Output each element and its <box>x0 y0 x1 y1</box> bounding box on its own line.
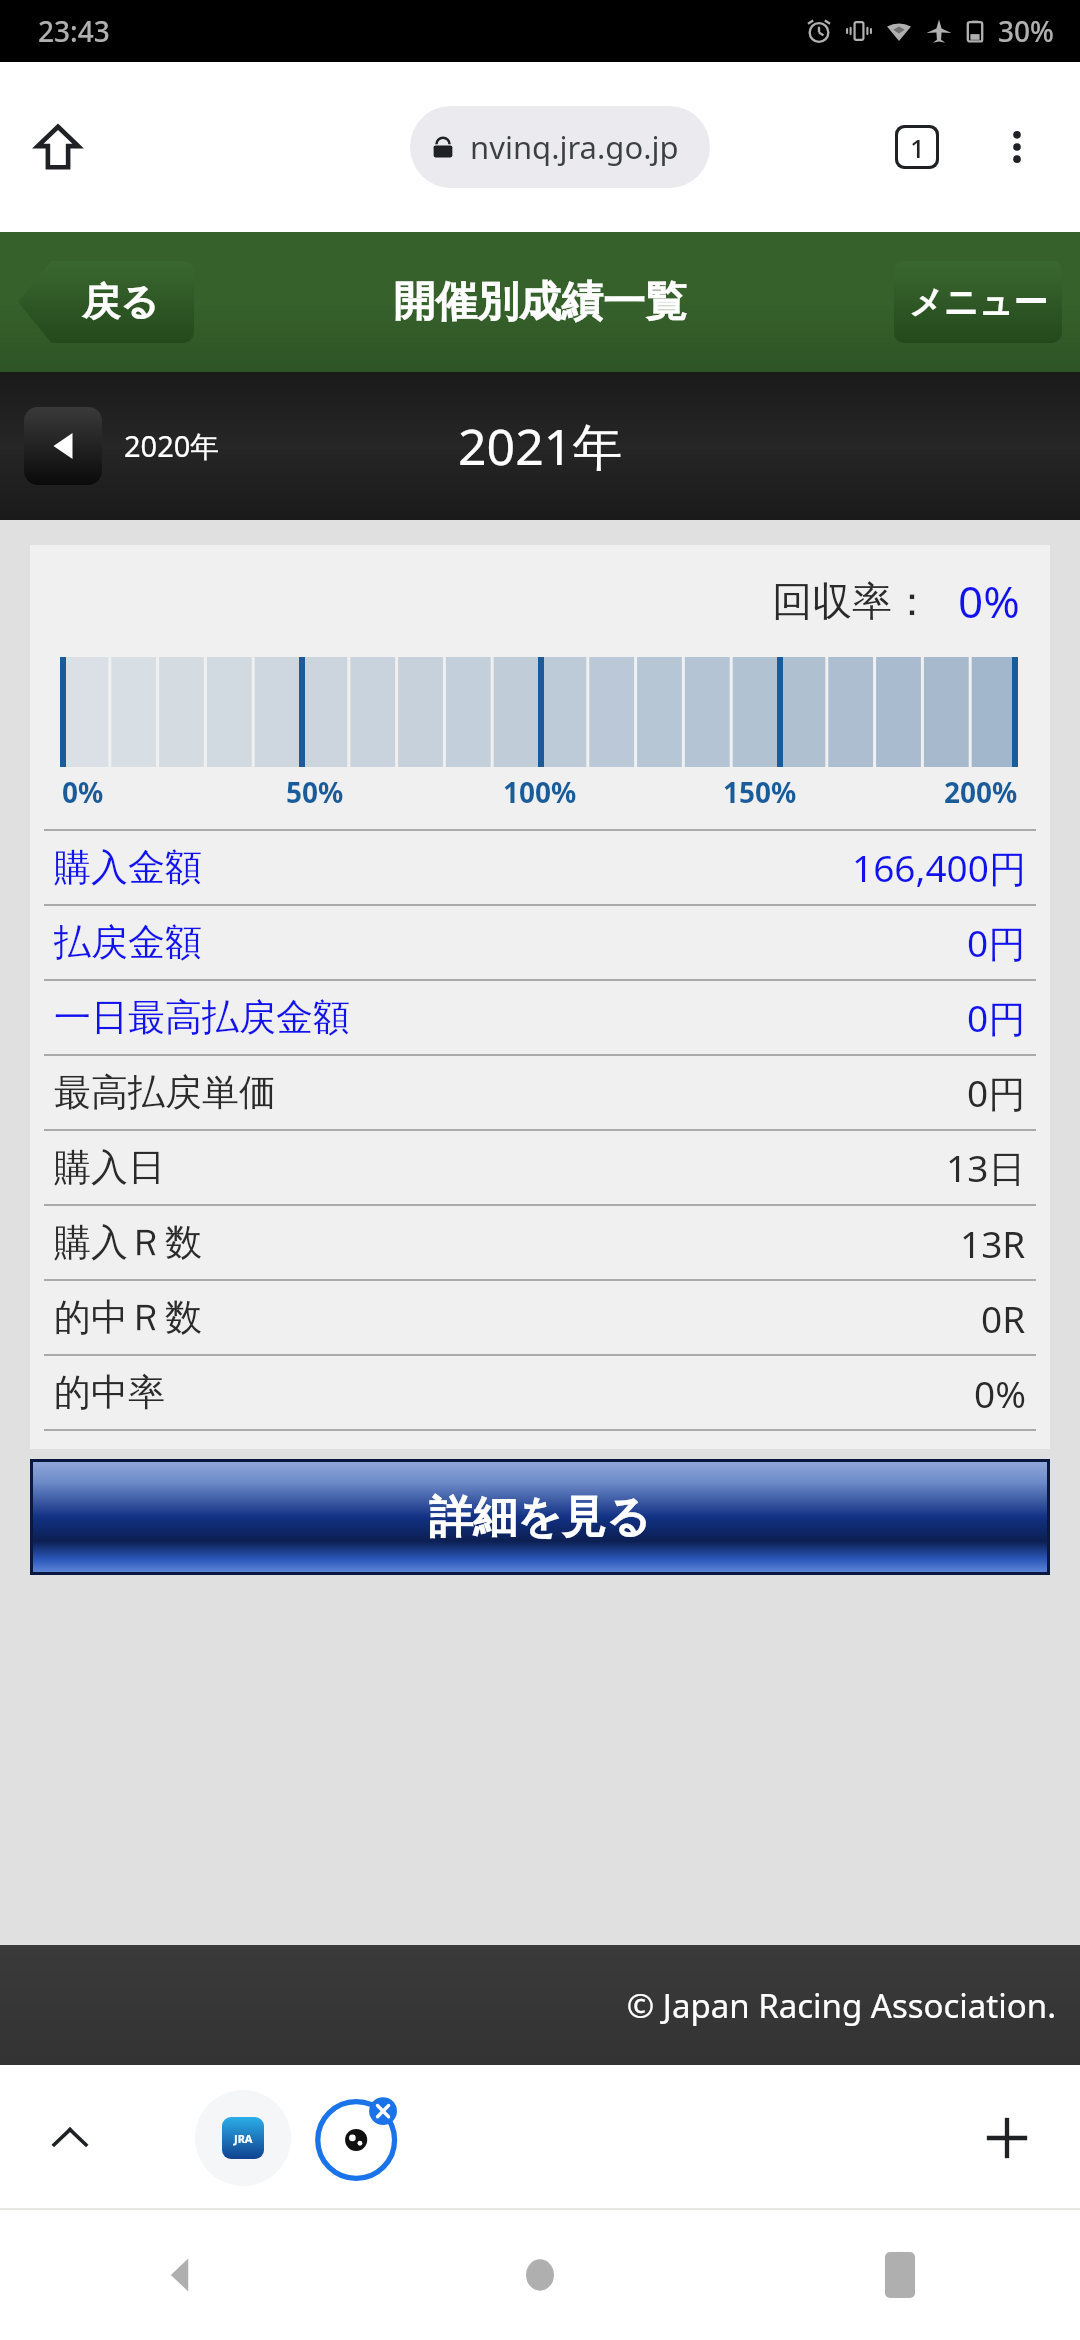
staticText: 30% <box>998 12 1054 50</box>
staticText: 2020年 <box>124 426 220 466</box>
button[interactable]: More options <box>984 114 1050 180</box>
staticText: 購入日 <box>54 1144 165 1191</box>
button[interactable]: Recent apps <box>720 2210 1080 2340</box>
staticText: 最高払戻単価 <box>54 1069 276 1116</box>
staticText: 0% <box>958 571 1020 631</box>
button[interactable]: Club JRA-Net shortcut <box>195 2090 291 2186</box>
staticText: JRA <box>234 2131 253 2146</box>
staticText: 150% <box>723 773 797 807</box>
staticText: 的中率 <box>54 1369 165 1416</box>
button[interactable]: nvinq.jra.go.jp/jrasp/JRA <box>410 106 710 188</box>
staticText: 払戻金額 <box>54 919 202 966</box>
staticText: 50% <box>286 773 344 807</box>
button[interactable]: Expand <box>35 2103 105 2173</box>
staticText: 回収率： <box>772 576 932 626</box>
staticText: 166,400円 <box>852 842 1026 893</box>
button[interactable]: 購入金額 <box>30 831 1050 904</box>
staticText: 23:43 <box>38 12 110 50</box>
button[interactable]: 一日最高払戻金額 <box>30 981 1050 1054</box>
staticText: 的中Ｒ数 <box>54 1294 202 1341</box>
staticText: 13日 <box>946 1142 1026 1193</box>
staticText: 一日最高払戻金額 <box>54 994 350 1041</box>
staticText: 1 <box>910 130 925 165</box>
button[interactable]: Close tab <box>310 2088 410 2188</box>
button[interactable]: Back <box>0 2210 360 2340</box>
staticText: 0円 <box>967 1067 1026 1118</box>
button[interactable]: 払戻金額 <box>30 906 1050 979</box>
staticText: 2021年 <box>458 412 623 480</box>
staticText: 0円 <box>967 917 1026 968</box>
button[interactable]: Tabs <box>884 114 950 180</box>
staticText: 0% <box>974 1368 1026 1418</box>
button[interactable]: Add <box>969 2100 1045 2176</box>
button[interactable]: Home <box>360 2210 720 2340</box>
staticText: 戻る <box>82 278 159 326</box>
staticText: nvinq.jra.go.jp/jrasp/JRA <box>470 126 690 168</box>
staticText: 詳細を見る <box>429 1490 652 1545</box>
button[interactable]: 詳細を見る <box>33 1462 1047 1572</box>
staticText: 13R <box>960 1218 1026 1268</box>
staticText: 100% <box>503 773 577 807</box>
staticText: 購入Ｒ数 <box>54 1219 202 1266</box>
button[interactable]: メニュー <box>894 261 1062 343</box>
button[interactable]: 2020年 <box>24 407 220 485</box>
staticText: 開催別成績一覧 <box>393 276 687 329</box>
staticText: 0% <box>62 773 104 807</box>
staticText: 購入金額 <box>54 844 202 891</box>
staticText: 0円 <box>967 992 1026 1043</box>
button[interactable]: 戻る <box>18 261 194 343</box>
staticText: メニュー <box>909 281 1048 324</box>
staticText: 0R <box>981 1293 1026 1343</box>
button[interactable]: Home <box>22 111 94 183</box>
staticText: 200% <box>944 773 1018 807</box>
staticText: © Japan Racing Association. <box>0 1983 1056 2028</box>
